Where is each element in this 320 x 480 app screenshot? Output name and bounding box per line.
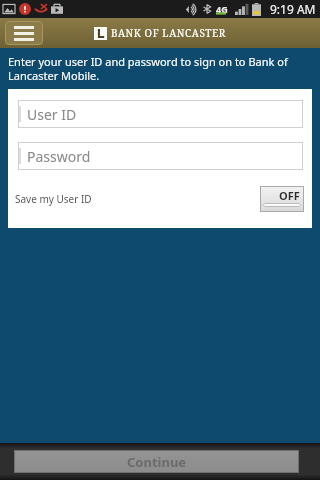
staticText: Continue (127, 453, 187, 471)
button[interactable]: Save my User ID toggle, off (260, 186, 304, 212)
staticText: 4G (216, 3, 228, 15)
staticText: Save my User ID (15, 192, 92, 206)
staticText: OFF (279, 188, 300, 203)
button[interactable]: Password (18, 142, 303, 170)
staticText: BANK OF LANCASTER (111, 26, 226, 40)
button[interactable]: User ID (18, 100, 303, 128)
staticText: Password (27, 147, 91, 166)
staticText: User ID (27, 105, 77, 124)
staticText: 9:19 AM (270, 1, 316, 17)
staticText: Enter your user ID and password to sign … (8, 54, 310, 83)
button[interactable]: Continue (14, 450, 299, 473)
button[interactable]: Open navigation menu (5, 21, 43, 45)
